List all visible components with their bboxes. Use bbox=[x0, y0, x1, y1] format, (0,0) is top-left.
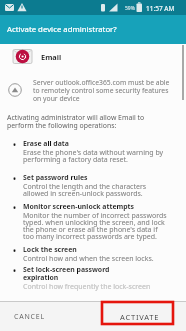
staticText: • bbox=[13, 202, 23, 213]
button[interactable]: ACTIVATE bbox=[93, 302, 186, 331]
staticText: CANCEL bbox=[14, 312, 46, 322]
staticText: Set lock-screen password expiration bbox=[23, 265, 110, 282]
staticText: • bbox=[13, 139, 23, 150]
staticText: 11:57 AM bbox=[146, 4, 175, 13]
button[interactable] bbox=[1, 78, 27, 102]
button[interactable]: • bbox=[13, 245, 186, 264]
staticText: Erase the phone's data without warning b… bbox=[23, 148, 164, 165]
button[interactable]: • bbox=[13, 173, 186, 199]
staticText: Control how and when the screen locks. bbox=[23, 254, 154, 264]
staticText: 59% bbox=[125, 5, 135, 12]
staticText: Control how frequently the lock-screen bbox=[23, 282, 151, 292]
button[interactable]: • bbox=[13, 202, 186, 242]
staticText: Activating administrator will allow Emai… bbox=[7, 113, 145, 130]
staticText: Lock the screen bbox=[23, 245, 77, 254]
staticText: Set password rules bbox=[23, 173, 88, 182]
button[interactable]: • bbox=[13, 265, 186, 292]
staticText: Activate device administrator? bbox=[7, 24, 117, 35]
staticText: Erase all data bbox=[23, 139, 69, 148]
staticText: • bbox=[13, 173, 23, 184]
staticText: Monitor screen-unlock attempts bbox=[23, 202, 135, 211]
staticText: Monitor the number of incorrect password… bbox=[23, 211, 167, 242]
button[interactable]: CANCEL bbox=[0, 302, 93, 331]
staticText: Control the length and the characters al… bbox=[23, 182, 147, 199]
button[interactable]: Email bbox=[13, 48, 186, 65]
staticText: • bbox=[13, 265, 23, 276]
staticText: Server outlook.office365.com must be abl… bbox=[33, 78, 170, 103]
button[interactable]: • bbox=[13, 139, 186, 165]
staticText: ACTIVATE bbox=[120, 312, 160, 322]
staticText: • bbox=[13, 245, 23, 256]
staticText: Email bbox=[41, 52, 62, 62]
